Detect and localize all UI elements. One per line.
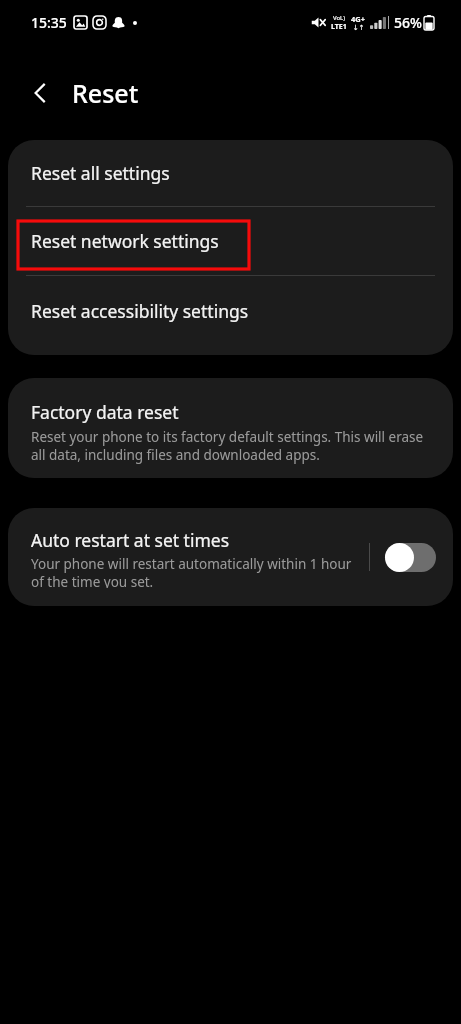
button[interactable]: Reset accessibility settings [8, 276, 453, 346]
button[interactable]: Reset all settings [8, 140, 453, 206]
button[interactable]: Auto restart toggle [385, 543, 436, 572]
staticText: Reset accessibility settings [31, 299, 249, 323]
staticText: Auto restart at set times [31, 528, 230, 552]
button[interactable]: Auto restart at set times [31, 528, 365, 588]
staticText: Reset [72, 76, 139, 110]
button[interactable]: Back [20, 73, 60, 113]
staticText: Your phone will restart automatically wi… [31, 555, 365, 588]
staticText: LTE1 [331, 22, 347, 32]
staticText: 15:35 [31, 13, 67, 32]
staticText: ↓↑ [353, 24, 365, 32]
staticText: 56% [394, 13, 422, 32]
staticText: VoL) [333, 14, 346, 22]
staticText: Reset your phone to its factory default … [31, 428, 430, 464]
button[interactable]: Reset network settings [8, 207, 453, 275]
staticText: 4G+ [351, 14, 366, 24]
staticText: Factory data reset [31, 400, 179, 424]
staticText: Reset network settings [31, 229, 219, 253]
button[interactable]: Factory data reset [8, 378, 453, 478]
staticText: Reset all settings [31, 161, 170, 185]
